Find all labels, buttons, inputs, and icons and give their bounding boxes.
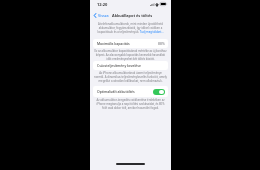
- staticText: Maximális kapacitás: [97, 41, 130, 46]
- staticText: Ez az akkumulátor kapacitásának mértéke …: [94, 49, 167, 61]
- staticText: Az iPhone akkumulátorának üzemi teljesít…: [94, 71, 167, 83]
- staticText: Csúcsteljesítmény kezelése: [97, 63, 141, 68]
- button[interactable]: Maximális kapacitás: [93, 39, 168, 48]
- staticText: 88%: [158, 41, 165, 46]
- staticText: Az akkumulátor-öregedés csökkentése érde…: [94, 98, 167, 110]
- button[interactable]: Csúcsteljesítmény kezelése: [93, 61, 168, 70]
- staticText: A telefonakkumulátorok, mint minden újra…: [94, 22, 167, 34]
- button[interactable]: Optimalizált akkutöltés kapcsoló: [153, 89, 165, 95]
- button[interactable]: Vissza: [94, 11, 109, 19]
- button[interactable]: Optimalizált akkutöltés: [93, 86, 168, 97]
- staticText: Optimalizált akkutöltés: [97, 89, 135, 94]
- staticText: Akkuállapot és töltés: [112, 13, 153, 18]
- staticText: Vissza: [98, 13, 109, 18]
- staticText: 12:20: [97, 2, 108, 7]
